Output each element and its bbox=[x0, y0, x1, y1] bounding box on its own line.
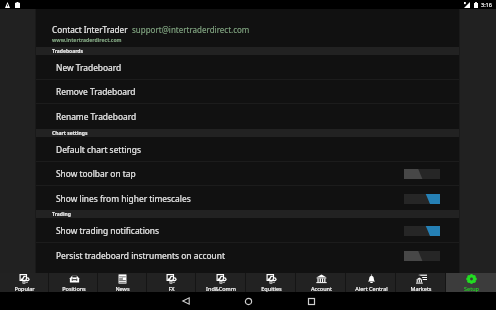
staticText: Setup bbox=[464, 285, 479, 292]
button[interactable]: Ind&Comm bbox=[196, 273, 246, 292]
staticText: Persist tradeboard instruments on accoun… bbox=[56, 250, 225, 261]
button[interactable]: Setup bbox=[446, 273, 496, 292]
staticText: www.intertraderdirect.com bbox=[52, 37, 122, 44]
staticText: Markets bbox=[410, 285, 432, 292]
button[interactable]: FX bbox=[147, 273, 196, 292]
staticText: Alert Central bbox=[355, 285, 388, 292]
button[interactable]: Positions bbox=[49, 273, 98, 292]
staticText: News bbox=[115, 285, 130, 292]
staticText: FX bbox=[168, 285, 175, 292]
staticText: Chart settings bbox=[52, 130, 88, 137]
button[interactable]: Markets bbox=[396, 273, 446, 292]
button[interactable]: Alert Central bbox=[346, 273, 396, 292]
button[interactable]: Popular bbox=[0, 273, 49, 292]
staticText: Account bbox=[311, 285, 332, 292]
staticText: Contact InterTrader bbox=[52, 24, 128, 35]
staticText: Rename Tradeboard bbox=[56, 111, 137, 122]
staticText: Ind&Comm bbox=[206, 285, 236, 292]
button[interactable]: Show trading notifications bbox=[36, 218, 459, 243]
staticText: Show lines from higher timescales bbox=[56, 193, 191, 204]
staticText: 3:16 bbox=[481, 1, 492, 8]
staticText: Show toolbar on tap bbox=[56, 168, 136, 179]
staticText: Show trading notifications bbox=[56, 225, 160, 236]
staticText: Remove Tradeboard bbox=[56, 86, 136, 97]
staticText: New Tradeboard bbox=[56, 62, 122, 73]
button[interactable]: Show toolbar on tap bbox=[36, 161, 459, 186]
button[interactable]: Default chart settings bbox=[36, 137, 459, 162]
button[interactable]: Recents bbox=[289, 292, 334, 310]
staticText: support@intertraderdirect.com bbox=[132, 24, 250, 35]
button[interactable]: Back bbox=[163, 292, 208, 310]
button[interactable]: Rename Tradeboard bbox=[36, 104, 459, 129]
button[interactable]: Show lines from higher timescales bbox=[36, 186, 459, 211]
button[interactable]: Remove Tradeboard bbox=[36, 79, 459, 104]
staticText: Trading bbox=[52, 211, 71, 218]
staticText: Equities bbox=[261, 285, 282, 292]
button[interactable]: Equities bbox=[246, 273, 296, 292]
button[interactable]: Persist tradeboard instruments on accoun… bbox=[36, 243, 459, 268]
staticText: Positions bbox=[62, 285, 86, 292]
button[interactable]: Home bbox=[226, 292, 271, 310]
button[interactable]: News bbox=[98, 273, 147, 292]
staticText: Tradeboards bbox=[52, 48, 83, 55]
staticText: Default chart settings bbox=[56, 144, 141, 155]
staticText: Popular bbox=[14, 285, 35, 292]
button[interactable]: Account bbox=[296, 273, 346, 292]
button[interactable]: New Tradeboard bbox=[36, 55, 459, 80]
